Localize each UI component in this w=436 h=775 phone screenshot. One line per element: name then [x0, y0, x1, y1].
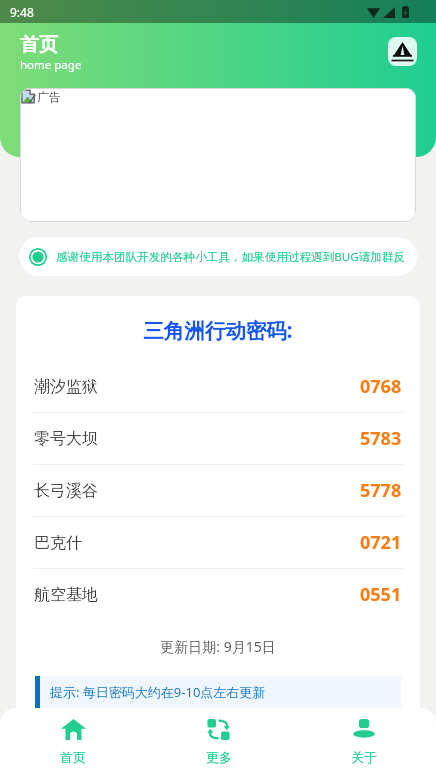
staticText: home page [20, 57, 82, 73]
staticText: 5783 [360, 426, 402, 451]
button[interactable]: 潮汐监狱 [16, 361, 420, 412]
staticText: 航空基地 [34, 585, 98, 605]
button[interactable]: App logo [388, 37, 417, 66]
staticText: 0768 [360, 374, 402, 399]
staticText: 零号大坝 [34, 429, 98, 449]
staticText: 更多 [206, 749, 232, 765]
staticText: 感谢使用本团队开发的各种小工具，如果使用过程遇到BUG请加群反 [56, 249, 406, 265]
button[interactable]: 关于 [291, 708, 436, 775]
staticText: 巴克什 [34, 533, 82, 553]
staticText: 5778 [360, 478, 402, 503]
button[interactable]: 感谢使用本团队开发的各种小工具，如果使用过程遇到BUG请加群反 [19, 237, 417, 276]
staticText: 更新日期: 9月15日 [16, 637, 420, 656]
button[interactable]: 巴克什 [16, 517, 420, 568]
button[interactable]: 零号大坝 [16, 413, 420, 464]
staticText: 潮汐监狱 [34, 377, 98, 397]
button[interactable]: 更多 [146, 708, 291, 775]
staticText: 关于 [351, 749, 377, 765]
button[interactable]: 长弓溪谷 [16, 465, 420, 516]
staticText: 0721 [360, 530, 402, 555]
staticText: 0551 [360, 582, 402, 607]
staticText: 广告 [37, 89, 61, 104]
staticText: 首页 [20, 33, 58, 57]
button[interactable]: 广告 [20, 88, 416, 222]
button[interactable]: 航空基地 [16, 569, 420, 620]
staticText: 三角洲行动密码: [16, 316, 420, 344]
staticText: 提示: 每日密码大约在9-10点左右更新 [50, 683, 266, 701]
staticText: 9:48 [10, 4, 34, 20]
button[interactable]: 首页 [0, 708, 146, 775]
staticText: 首页 [60, 749, 86, 765]
staticText: 长弓溪谷 [34, 481, 98, 501]
